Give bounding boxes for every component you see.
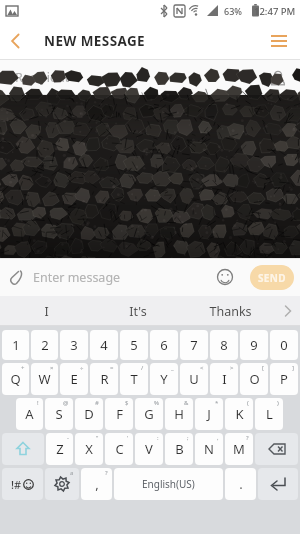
staticText: G bbox=[144, 405, 154, 423]
staticText: ! bbox=[37, 399, 39, 407]
button[interactable]: R bbox=[90, 363, 118, 395]
button[interactable]: 6 bbox=[150, 330, 178, 360]
staticText: % bbox=[154, 399, 159, 407]
staticText: O bbox=[249, 370, 260, 388]
staticText: Q bbox=[10, 370, 21, 388]
button[interactable]: Thanks bbox=[184, 296, 276, 326]
button[interactable]: V bbox=[135, 433, 163, 465]
button[interactable]: Enter bbox=[258, 468, 298, 500]
staticText: ] bbox=[292, 364, 294, 372]
staticText: , bbox=[217, 434, 219, 442]
staticText: V bbox=[145, 440, 153, 458]
staticText: N bbox=[204, 440, 214, 458]
staticText: M bbox=[233, 440, 245, 458]
staticText: Y bbox=[160, 370, 168, 388]
button[interactable]: B bbox=[165, 433, 193, 465]
button[interactable]: 1 bbox=[2, 330, 29, 360]
button[interactable]: X bbox=[75, 433, 103, 465]
button[interactable]: Back bbox=[0, 26, 30, 56]
staticText: - bbox=[67, 434, 69, 442]
button[interactable]: Z bbox=[46, 433, 73, 465]
button[interactable]: T bbox=[120, 363, 148, 395]
staticText: W bbox=[38, 370, 51, 388]
staticText: 7 bbox=[190, 336, 198, 354]
staticText: B bbox=[175, 440, 184, 458]
button[interactable]: 7 bbox=[180, 330, 208, 360]
staticText: 0 bbox=[280, 336, 288, 354]
button[interactable]: 2 bbox=[31, 330, 58, 360]
staticText: * bbox=[215, 399, 219, 407]
staticText: A bbox=[25, 405, 34, 423]
staticText: 63% bbox=[224, 5, 242, 17]
staticText: ? bbox=[246, 434, 249, 442]
button[interactable]: 3 bbox=[60, 330, 88, 360]
staticText: SEND bbox=[258, 271, 286, 285]
staticText: Z bbox=[56, 440, 64, 458]
staticText: !# bbox=[11, 477, 22, 492]
button[interactable]: D bbox=[75, 398, 103, 430]
button[interactable]: Attach bbox=[2, 263, 30, 291]
staticText: I bbox=[44, 303, 49, 320]
staticText: 3 bbox=[70, 336, 78, 354]
button[interactable]: 5 bbox=[120, 330, 148, 360]
button[interactable]: A bbox=[16, 398, 43, 430]
staticText: English(US) bbox=[142, 477, 195, 491]
button[interactable]: 9 bbox=[240, 330, 268, 360]
button[interactable]: Y bbox=[150, 363, 178, 395]
staticText: NEW MESSAGE bbox=[44, 32, 146, 50]
staticText: C bbox=[115, 440, 124, 458]
button[interactable]: 0 bbox=[270, 330, 298, 360]
button[interactable]: Settings bbox=[45, 468, 79, 500]
button[interactable]: S bbox=[45, 398, 73, 430]
button[interactable]: Symbols bbox=[2, 468, 43, 500]
button[interactable]: Add recipient from contacts bbox=[264, 64, 292, 92]
button[interactable]: I bbox=[210, 363, 238, 395]
button[interactable]: U bbox=[180, 363, 208, 395]
button[interactable]: Shift bbox=[2, 433, 44, 465]
button[interactable]: C bbox=[105, 433, 133, 465]
button[interactable]: J bbox=[195, 398, 223, 430]
button[interactable]: P bbox=[270, 363, 298, 395]
staticText: R bbox=[100, 370, 109, 388]
button[interactable]: H bbox=[165, 398, 193, 430]
staticText: : bbox=[157, 434, 159, 442]
button[interactable]: Menu bbox=[264, 26, 294, 56]
staticText: U bbox=[189, 370, 199, 388]
button[interactable]: O bbox=[240, 363, 268, 395]
staticText: $ bbox=[125, 399, 129, 407]
button[interactable]: More suggestions bbox=[276, 299, 300, 323]
staticText: L bbox=[266, 405, 273, 423]
button[interactable]: W bbox=[31, 363, 58, 395]
staticText: T bbox=[130, 370, 138, 388]
staticText: 4 bbox=[100, 336, 108, 354]
staticText: _ bbox=[171, 364, 174, 372]
button[interactable]: Backspace bbox=[255, 433, 298, 465]
button[interactable]: K bbox=[225, 398, 253, 430]
button[interactable]: . bbox=[225, 468, 256, 500]
button[interactable]: G bbox=[135, 398, 163, 430]
button[interactable]: , bbox=[81, 468, 112, 500]
staticText: ? bbox=[105, 469, 108, 477]
button[interactable]: SEND bbox=[250, 265, 294, 290]
button[interactable]: F bbox=[105, 398, 133, 430]
button[interactable]: 4 bbox=[90, 330, 118, 360]
staticText: " bbox=[96, 434, 99, 442]
staticText: ÷ bbox=[80, 364, 84, 372]
staticText: a bbox=[70, 469, 74, 477]
staticText: K bbox=[235, 405, 244, 423]
staticText: + bbox=[21, 364, 25, 372]
button[interactable]: E bbox=[60, 363, 88, 395]
staticText: & bbox=[184, 399, 189, 407]
button[interactable]: I bbox=[0, 296, 92, 326]
button[interactable]: 8 bbox=[210, 330, 238, 360]
button[interactable]: M bbox=[225, 433, 253, 465]
button[interactable]: N bbox=[195, 433, 223, 465]
staticText: # bbox=[95, 399, 99, 407]
staticText: [ bbox=[262, 364, 264, 372]
button[interactable]: Q bbox=[2, 363, 29, 395]
button[interactable]: Emoji bbox=[212, 264, 238, 290]
button[interactable]: L bbox=[255, 398, 283, 430]
button[interactable]: It's bbox=[92, 296, 184, 326]
staticText: . bbox=[239, 475, 243, 493]
button[interactable]: English(US) bbox=[114, 468, 223, 500]
